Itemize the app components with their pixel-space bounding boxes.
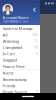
staticText: Completed [2,45,21,50]
staticText: Flow in Time [2,64,24,69]
button[interactable]: Flow in Time [0,63,40,69]
button[interactable]: Recent activity [0,76,40,82]
staticText: 12 [34,39,38,43]
staticText: Switch to Manage [2,26,32,31]
staticText: 18 [34,46,38,49]
button[interactable]: In Cart [0,51,40,57]
staticText: name@example.com [2,20,27,23]
staticText: In Cart [2,51,14,56]
button[interactable]: Switch to Manage [0,25,40,32]
staticText: 4 [36,52,38,55]
staticText: Recent activity [2,77,26,82]
staticText: All [2,32,7,37]
button[interactable]: Snapped [0,57,40,63]
staticText: 7 [36,90,38,94]
staticText: Snapped [2,57,16,63]
button[interactable]: Watching [0,38,40,44]
staticText: Friends [2,83,15,88]
staticText: People Search [2,89,26,95]
button[interactable]: Expand account list [32,7,37,12]
staticText: Alerts [2,70,13,76]
button[interactable]: Completed [0,44,40,51]
staticText: 104 [32,33,38,37]
button[interactable]: People Search [0,89,40,95]
button[interactable]: Alerts [0,70,40,76]
staticText: Account Name [2,15,28,20]
button[interactable]: All [0,32,40,38]
button[interactable]: Friends [0,82,40,89]
staticText: Watching [2,38,18,44]
